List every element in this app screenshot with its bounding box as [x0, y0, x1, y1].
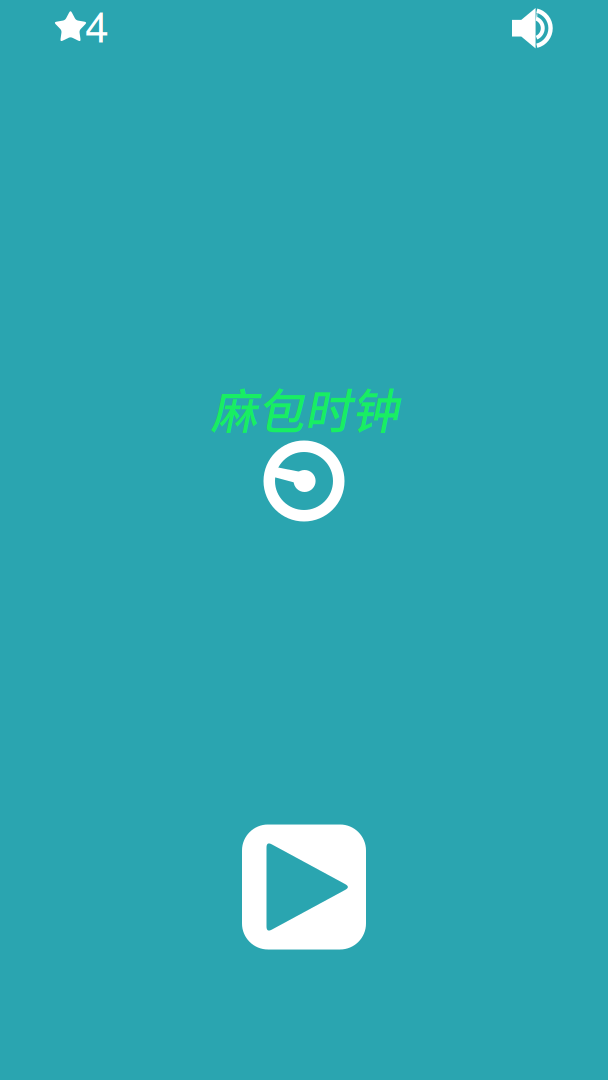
button[interactable]: Score 4 stars: [51, 0, 125, 52]
staticText: 4: [85, 0, 109, 55]
button[interactable]: Sound: [500, 0, 565, 60]
staticText: 麻包时钟: [210, 374, 398, 442]
button[interactable]: Play: [242, 824, 366, 949]
